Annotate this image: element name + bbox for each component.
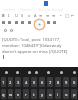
button[interactable]: format x: [26, 11, 32, 19]
staticText: t: [33, 92, 35, 97]
button[interactable]: kb tool 1: [14, 69, 20, 75]
button[interactable]: kb tool 5: [58, 69, 64, 75]
button[interactable]: q: [1, 89, 6, 99]
button[interactable]: kb tool 0: [3, 69, 9, 75]
button[interactable]: o: [63, 89, 69, 99]
button[interactable]: insert 2: [13, 19, 19, 26]
button[interactable]: format •: [58, 11, 64, 19]
staticText: A: [34, 13, 37, 18]
button[interactable]: format □: [64, 11, 70, 19]
staticText: 3: [17, 80, 20, 85]
button[interactable]: format B: [0, 11, 6, 19]
staticText: 5: [33, 80, 36, 85]
button[interactable]: t: [31, 89, 37, 99]
button[interactable]: more 0: [2, 27, 8, 33]
button[interactable]: 7: [47, 77, 53, 87]
button[interactable]: 6: [39, 77, 45, 87]
staticText: i: [57, 92, 59, 97]
button[interactable]: kb tool 6: [71, 69, 77, 75]
button[interactable]: 2: [8, 77, 13, 87]
button[interactable]: format I: [6, 11, 12, 19]
button[interactable]: 4: [23, 77, 29, 87]
button[interactable]: format ≡: [38, 11, 44, 19]
button[interactable]: format ↩: [70, 11, 76, 19]
staticText: □: [65, 13, 69, 18]
staticText: 7: [49, 80, 52, 85]
staticText: •: [60, 13, 62, 18]
staticText: o: [65, 92, 68, 97]
button[interactable]: i: [55, 89, 61, 99]
button[interactable]: 5: [31, 77, 37, 87]
button[interactable]: insert 8: [51, 19, 57, 26]
button[interactable]: insert 5: [32, 19, 38, 26]
button[interactable]: insert 7: [45, 19, 51, 26]
button[interactable]: kb tool 2: [26, 69, 32, 75]
staticText: ↩: [71, 13, 75, 18]
button[interactable]: w: [8, 89, 13, 99]
staticText: e: [17, 92, 20, 97]
staticText: 8: [57, 80, 60, 85]
staticText: u: [49, 92, 52, 97]
staticText: y: [41, 92, 44, 97]
button[interactable]: u: [47, 89, 53, 99]
staticText: x: [28, 13, 31, 18]
staticText: U: [15, 13, 18, 18]
staticText: doesn't appear on miss [/QUOTE]: [2, 49, 68, 55]
button[interactable]: insert 4: [26, 19, 32, 26]
button[interactable]: format A: [32, 11, 38, 19]
button[interactable]: p: [71, 89, 77, 99]
staticText: 1: [2, 80, 5, 85]
staticText: w: [9, 92, 13, 97]
staticText: 9: [65, 80, 68, 85]
button[interactable]: more 1: [8, 27, 14, 33]
staticText: 2: [9, 80, 12, 85]
button[interactable]: format ≡: [51, 11, 57, 19]
staticText: member: 1048439"]Gdwcwuty: [2, 43, 62, 49]
button[interactable]: 3: [15, 77, 21, 87]
staticText: 4: [25, 80, 28, 85]
staticText: q: [2, 92, 5, 97]
button[interactable]: insert 0: [0, 19, 6, 26]
button[interactable]: e: [15, 89, 21, 99]
staticText: 0: [73, 80, 76, 85]
staticText: [QUOTE="tool, post: 1034177,: [2, 37, 61, 43]
staticText: B: [2, 13, 5, 18]
button[interactable]: insert 1: [6, 19, 12, 26]
button[interactable]: r: [23, 89, 29, 99]
staticText: 6: [41, 80, 44, 85]
button[interactable]: kb tool 4: [45, 69, 51, 75]
button[interactable]: 1: [1, 77, 6, 87]
button[interactable]: 8: [55, 77, 61, 87]
staticText: I: [8, 13, 10, 18]
button[interactable]: format S: [19, 11, 25, 19]
staticText: ≡: [46, 13, 50, 18]
staticText: S: [21, 13, 24, 18]
button[interactable]: kb tool 3: [33, 69, 39, 75]
staticText: ≡: [39, 13, 43, 18]
button[interactable]: insert 3: [19, 19, 25, 26]
staticText: r: [25, 92, 27, 97]
button[interactable]: format ≡: [45, 11, 51, 19]
staticText: xenforo › Forums › Reply to thread: [3, 7, 63, 12]
button[interactable]: insert 6: [38, 19, 44, 26]
button[interactable]: 0: [71, 77, 77, 87]
button[interactable]: 9: [63, 77, 69, 87]
staticText: ≡: [52, 13, 56, 18]
button[interactable]: y: [39, 89, 45, 99]
staticText: p: [73, 92, 76, 97]
button[interactable]: format U: [13, 11, 19, 19]
